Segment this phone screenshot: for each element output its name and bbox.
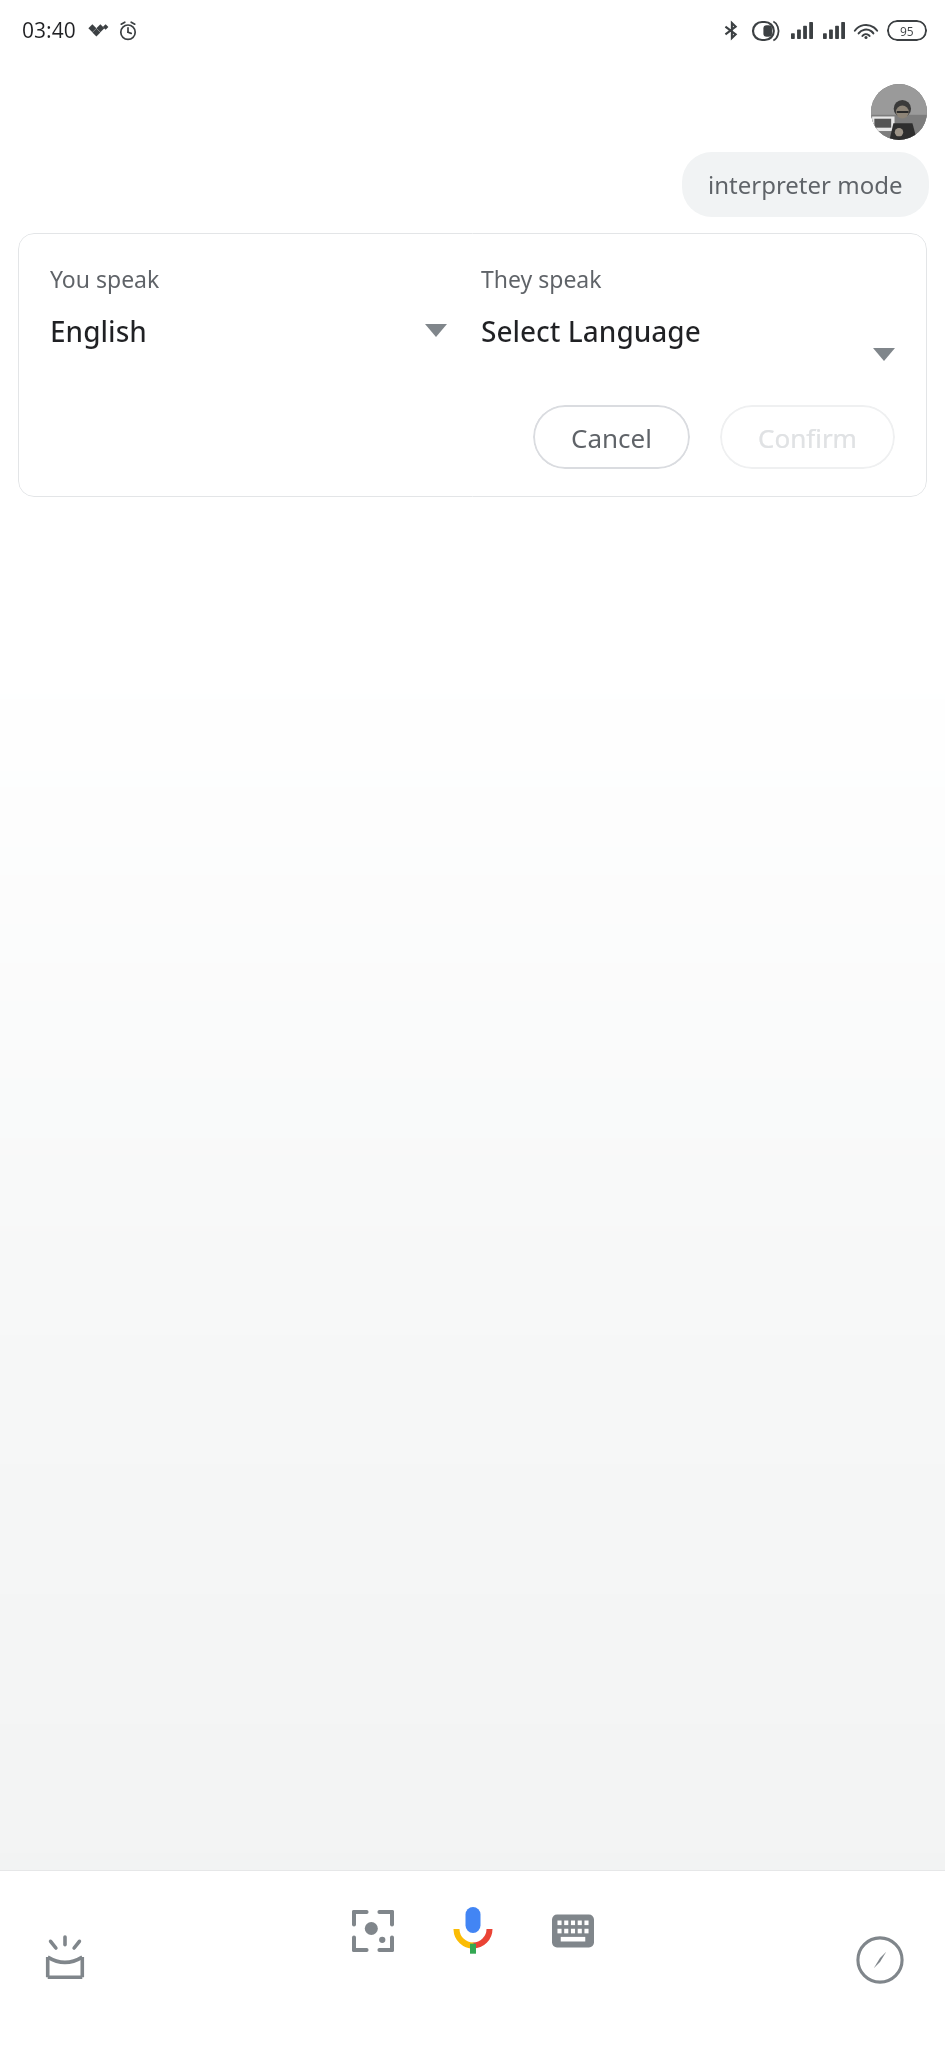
button[interactable]: English <box>50 312 463 350</box>
button[interactable]: Voice search <box>433 1891 513 1971</box>
button[interactable]: Google Lens <box>335 1893 411 1969</box>
staticText: 03:40 <box>22 16 76 45</box>
button[interactable]: Account <box>871 84 927 140</box>
button[interactable]: Cancel <box>533 405 690 469</box>
staticText: 95 <box>900 23 914 39</box>
button[interactable]: interpreter mode <box>682 152 929 217</box>
button[interactable]: Keyboard <box>535 1893 611 1969</box>
button[interactable]: Select Language <box>481 312 895 361</box>
staticText: You speak <box>50 263 160 294</box>
button[interactable]: Snapshot <box>20 1915 110 2005</box>
staticText: Confirm <box>758 420 857 455</box>
staticText: English <box>50 312 417 350</box>
staticText: Select Language <box>481 312 865 350</box>
staticText: They speak <box>481 263 602 294</box>
button[interactable]: Explore <box>835 1915 925 2005</box>
button[interactable]: Confirm <box>720 405 895 469</box>
staticText: Cancel <box>571 420 652 455</box>
staticText: interpreter mode <box>708 168 903 201</box>
